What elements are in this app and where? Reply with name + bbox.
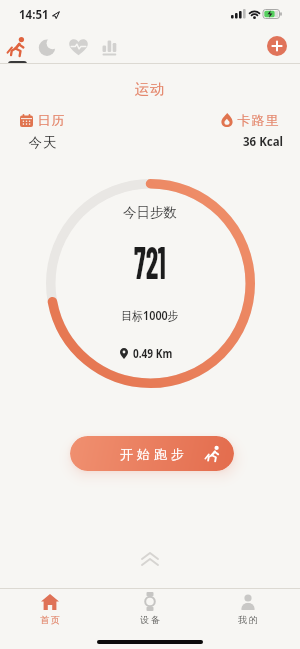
button[interactable] bbox=[2, 30, 32, 64]
staticText: 36 Kcal bbox=[243, 134, 284, 150]
staticText: 721 bbox=[57, 233, 243, 288]
staticText: 日历 bbox=[37, 112, 65, 128]
staticText: 开始跑步 bbox=[118, 446, 186, 462]
staticText: 设备 bbox=[139, 614, 161, 625]
staticText: 0.49 Km bbox=[133, 345, 172, 361]
button[interactable]: 日历 bbox=[20, 112, 65, 151]
staticText: 14:51 bbox=[19, 7, 49, 23]
staticText: 卡路里 bbox=[237, 112, 279, 128]
button[interactable] bbox=[267, 36, 287, 56]
staticText: 首页 bbox=[39, 614, 61, 625]
staticText: 目标1000步 bbox=[15, 307, 285, 323]
button[interactable] bbox=[32, 30, 63, 64]
button[interactable] bbox=[63, 30, 94, 64]
button[interactable] bbox=[94, 30, 125, 64]
button[interactable]: 开始跑步 bbox=[70, 436, 234, 471]
staticText: 今日步数 bbox=[0, 204, 300, 221]
staticText: 运动 bbox=[0, 80, 300, 98]
staticText: 我的 bbox=[237, 614, 259, 625]
staticText: 今天 bbox=[28, 134, 57, 151]
button[interactable]: 卡路里 bbox=[221, 112, 279, 128]
button[interactable]: 我的 bbox=[231, 594, 265, 628]
button[interactable]: 首页 bbox=[33, 594, 67, 628]
button[interactable]: 设备 bbox=[133, 592, 167, 628]
